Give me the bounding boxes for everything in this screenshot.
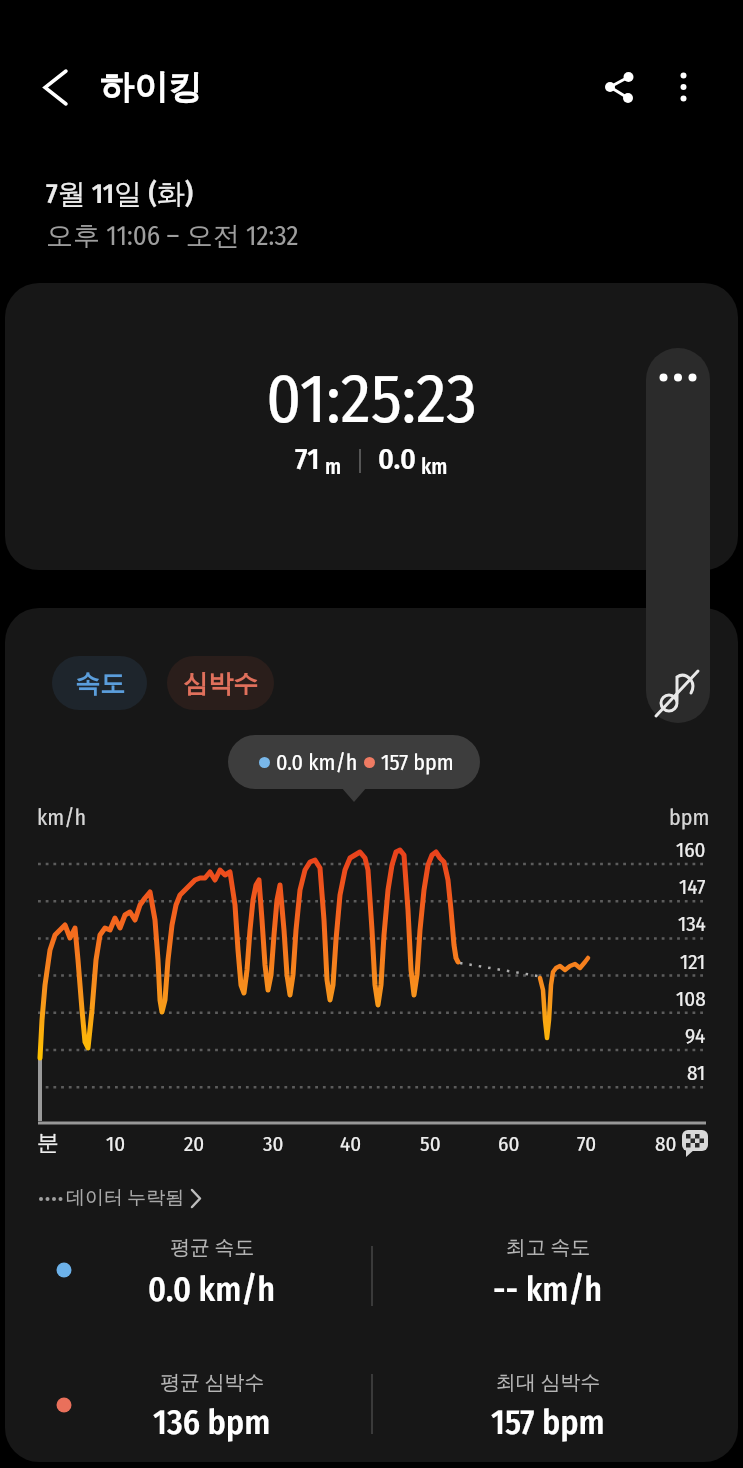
staticText: 0.0 km/h <box>276 749 358 775</box>
button[interactable] <box>662 67 706 111</box>
staticText: 71 <box>295 441 320 477</box>
staticText: 121 <box>680 949 706 974</box>
staticText: 147 <box>679 874 706 899</box>
staticText: 134 <box>678 911 706 936</box>
staticText: 7월 11일 (화) <box>46 176 194 211</box>
staticText: 136 bpm <box>153 1402 271 1443</box>
staticText: 0.0 km/h <box>148 1269 276 1310</box>
button[interactable]: 심박수 <box>167 656 274 710</box>
button[interactable] <box>646 661 710 723</box>
staticText: m <box>325 454 342 479</box>
staticText: 속도 <box>75 668 125 699</box>
staticText: bpm <box>669 804 710 830</box>
staticText: 20 <box>184 1131 205 1156</box>
staticText: 오후 11:06 – 오전 12:32 <box>46 219 299 253</box>
staticText: 40 <box>340 1131 362 1156</box>
staticText: 10 <box>106 1131 126 1156</box>
staticText: 최고 속도 <box>506 1235 591 1260</box>
staticText: 94 <box>685 1023 706 1048</box>
staticText: 160 <box>676 837 706 862</box>
staticText: 70 <box>577 1131 597 1156</box>
staticText: 0.0 <box>378 441 416 477</box>
staticText: 평균 속도 <box>170 1235 255 1260</box>
staticText: km <box>421 454 448 479</box>
staticText: 50 <box>420 1131 441 1156</box>
staticText: 157 bpm <box>381 749 454 775</box>
button[interactable] <box>36 66 80 110</box>
staticText: km/h <box>37 804 87 830</box>
staticText: 최대 심박수 <box>496 1370 601 1395</box>
staticText: 분 <box>37 1129 59 1157</box>
staticText: 80 <box>655 1131 677 1156</box>
staticText: 심박수 <box>183 668 258 699</box>
button[interactable]: 속도 <box>52 656 147 710</box>
staticText: 데이터 누락됨 <box>66 1186 185 1210</box>
staticText: 60 <box>498 1131 520 1156</box>
button[interactable] <box>646 348 710 410</box>
staticText: 157 bpm <box>491 1402 605 1443</box>
staticText: 81 <box>687 1060 706 1085</box>
staticText: 01:25:23 <box>266 358 477 440</box>
button[interactable] <box>598 67 642 111</box>
button[interactable] <box>36 1178 216 1218</box>
staticText: 30 <box>263 1131 284 1156</box>
staticText: 하이킹 <box>100 66 202 109</box>
staticText: 평균 심박수 <box>160 1370 265 1395</box>
staticText: 108 <box>676 986 706 1011</box>
staticText: -- km/h <box>493 1269 603 1310</box>
